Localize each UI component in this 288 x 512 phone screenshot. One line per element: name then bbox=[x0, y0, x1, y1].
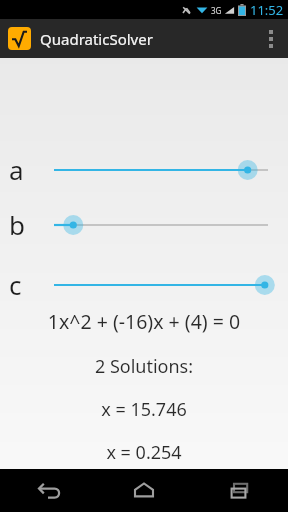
staticText: 11:52 bbox=[250, 1, 284, 19]
button[interactable] bbox=[0, 150, 288, 194]
button[interactable]: Back bbox=[0, 469, 96, 512]
staticText: b bbox=[9, 207, 25, 242]
staticText: 1x^2 + (-16)x + (4) = 0 bbox=[0, 308, 288, 335]
staticText: x = 15.746 bbox=[0, 397, 288, 422]
staticText: 2 Solutions: bbox=[0, 354, 288, 379]
button[interactable]: More options bbox=[254, 19, 288, 58]
button[interactable]: Home bbox=[96, 469, 192, 512]
button[interactable] bbox=[0, 205, 288, 249]
staticText: a bbox=[9, 152, 24, 187]
staticText: 3G bbox=[211, 5, 222, 16]
staticText: x = 0.254 bbox=[0, 440, 288, 465]
staticText: QuadraticSolver bbox=[40, 29, 153, 49]
staticText: c bbox=[9, 267, 22, 302]
button[interactable]: Recents bbox=[192, 469, 288, 512]
button[interactable] bbox=[0, 265, 288, 309]
